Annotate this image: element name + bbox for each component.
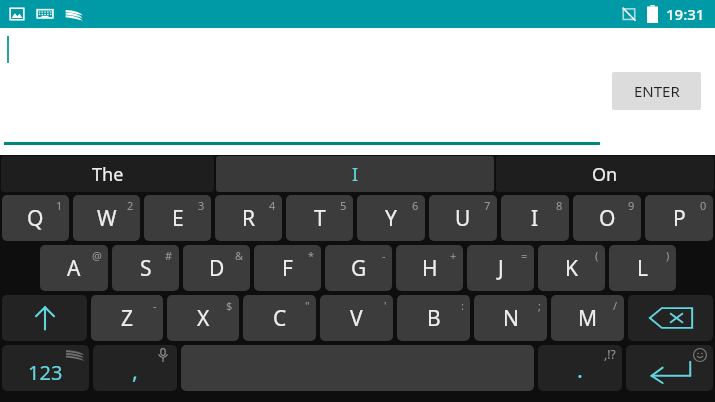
button[interactable]: Backspace (628, 295, 713, 341)
staticText: A (67, 254, 81, 283)
button[interactable]: D (183, 245, 250, 291)
staticText: ( (595, 248, 599, 263)
button[interactable]: I (216, 156, 494, 192)
staticText: I (352, 162, 359, 187)
staticText: D (209, 254, 225, 283)
staticText: E (172, 204, 184, 233)
button[interactable]: K (538, 245, 605, 291)
staticText: H (422, 254, 438, 283)
staticText: 9 (628, 198, 635, 213)
staticText: , (132, 355, 138, 385)
button[interactable]: T (286, 195, 353, 241)
button[interactable]: X (167, 295, 239, 341)
staticText: @ (92, 248, 102, 263)
staticText: * (308, 248, 315, 263)
staticText: W (97, 204, 117, 233)
button[interactable]: Shift (2, 295, 87, 341)
staticText: The (92, 162, 124, 187)
button[interactable]: V (320, 295, 393, 341)
staticText: 6 (412, 198, 419, 213)
button[interactable]: On (496, 156, 714, 192)
staticText: S (140, 254, 152, 283)
staticText: V (350, 304, 363, 333)
staticText: J (498, 254, 504, 283)
button[interactable]: U (429, 195, 497, 241)
staticText: 8 (556, 198, 563, 213)
staticText: $ (226, 298, 233, 313)
button[interactable]: J (467, 245, 534, 291)
staticText: 19:31 (666, 4, 705, 24)
button[interactable]: F (254, 245, 321, 291)
staticText: 3 (198, 198, 205, 213)
staticText: ENTER (634, 81, 680, 101)
button[interactable]: Y (357, 195, 425, 241)
button[interactable]: W (73, 195, 140, 241)
staticText: 123 (28, 359, 63, 386)
staticText: P (673, 204, 686, 233)
staticText: 5 (340, 198, 347, 213)
staticText: 2 (127, 198, 134, 213)
staticText: 7 (484, 198, 491, 213)
staticText: M (578, 304, 598, 333)
button[interactable]: G (325, 245, 392, 291)
staticText: ) (666, 248, 670, 263)
staticText: C (273, 304, 287, 333)
button[interactable]: O (573, 195, 641, 241)
button[interactable]: C (243, 295, 316, 341)
button[interactable]: R (215, 195, 282, 241)
button[interactable]: E (144, 195, 211, 241)
button[interactable]: B (397, 295, 470, 341)
staticText: F (282, 254, 293, 283)
button[interactable]: ENTER (612, 72, 701, 110)
staticText: " (305, 298, 310, 313)
staticText: G (351, 254, 367, 283)
staticText: L (637, 254, 649, 283)
staticText: T (314, 204, 326, 233)
button[interactable]: Z (91, 295, 163, 341)
button[interactable]: . (538, 345, 622, 391)
staticText: : (461, 298, 464, 313)
staticText: 1 (56, 198, 63, 213)
button[interactable]: P (645, 195, 713, 241)
staticText: 4 (269, 198, 276, 213)
staticText: Z (121, 304, 134, 333)
staticText: X (197, 304, 210, 333)
staticText: ' (384, 298, 387, 313)
staticText: R (242, 204, 256, 233)
button[interactable]: Enter (626, 345, 713, 391)
staticText: Y (385, 204, 397, 233)
staticText: ,!? (604, 346, 616, 362)
button[interactable]: A (40, 245, 108, 291)
staticText: 0 (700, 198, 707, 213)
staticText: N (503, 304, 519, 333)
button[interactable]: , (93, 345, 177, 391)
staticText: ; (538, 298, 541, 313)
button[interactable]: I (501, 195, 569, 241)
staticText: O (599, 204, 616, 233)
staticText: = (521, 248, 528, 263)
staticText: / (613, 298, 618, 313)
staticText: On (592, 162, 618, 187)
staticText: - (153, 298, 157, 313)
button[interactable]: M (551, 295, 624, 341)
staticText: . (577, 354, 583, 384)
button[interactable]: N (474, 295, 547, 341)
button[interactable]: 123 (2, 345, 89, 391)
button[interactable]: Q (2, 195, 69, 241)
button[interactable]: S (112, 245, 179, 291)
staticText: B (427, 304, 441, 333)
staticText: K (565, 254, 578, 283)
staticText: Q (27, 204, 44, 233)
staticText: # (165, 248, 173, 263)
button[interactable]: L (609, 245, 676, 291)
staticText: I (531, 204, 539, 233)
button[interactable]: H (396, 245, 463, 291)
staticText: & (235, 248, 244, 263)
staticText: - (382, 248, 386, 263)
staticText: U (455, 204, 471, 233)
staticText: + (450, 248, 457, 263)
button[interactable]: The (1, 156, 214, 192)
